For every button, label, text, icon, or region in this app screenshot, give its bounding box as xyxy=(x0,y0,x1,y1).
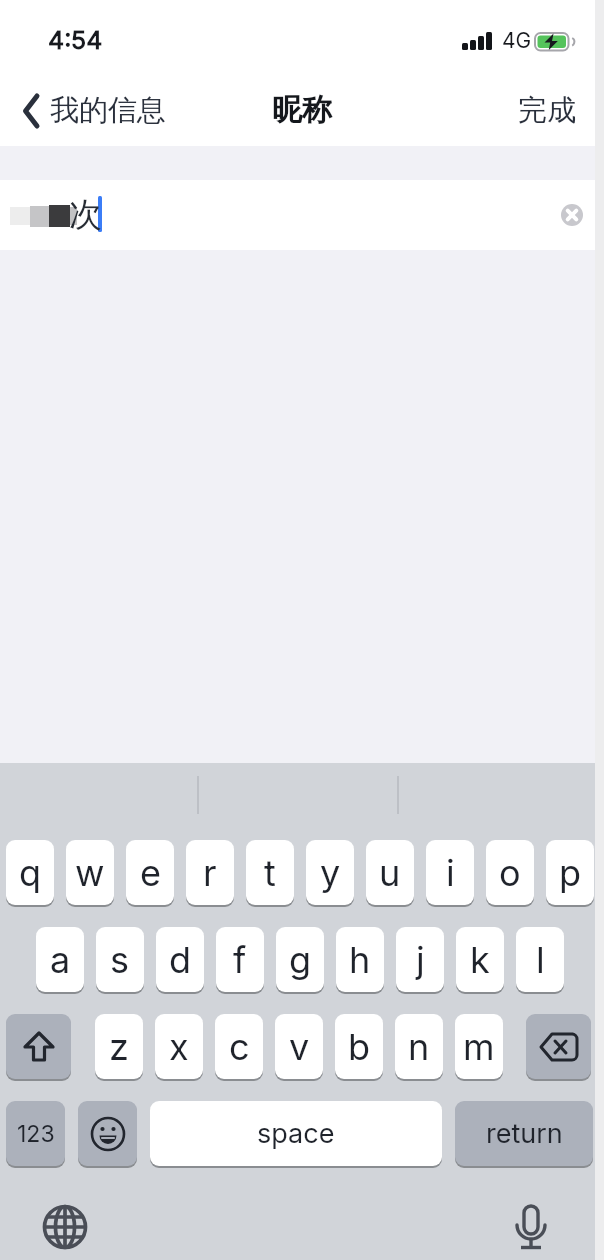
staticText: m xyxy=(463,1025,495,1069)
staticText: j xyxy=(416,938,425,982)
staticText: e xyxy=(140,851,161,895)
button[interactable]: 次 xyxy=(0,180,604,250)
button[interactable]: m xyxy=(455,1014,503,1079)
button[interactable]: 完成 xyxy=(518,92,576,129)
button[interactable] xyxy=(78,1101,137,1166)
staticText: y xyxy=(320,851,341,895)
button[interactable] xyxy=(41,1203,89,1251)
button[interactable]: s xyxy=(96,927,144,992)
staticText: 次 xyxy=(69,194,100,236)
button[interactable] xyxy=(526,1014,591,1079)
button[interactable]: z xyxy=(95,1014,143,1079)
staticText: 4G xyxy=(502,28,532,53)
staticText: 123 xyxy=(17,1120,55,1148)
staticText: f xyxy=(233,938,247,982)
button[interactable]: n xyxy=(395,1014,443,1079)
button[interactable]: h xyxy=(336,927,384,992)
staticText: u xyxy=(379,851,401,895)
button[interactable]: p xyxy=(546,840,594,905)
button[interactable]: k xyxy=(456,927,504,992)
button[interactable]: f xyxy=(216,927,264,992)
staticText: a xyxy=(50,938,71,982)
button[interactable]: x xyxy=(155,1014,203,1079)
staticText: s xyxy=(110,938,130,982)
staticText: return xyxy=(486,1117,563,1150)
button[interactable]: 我的信息 xyxy=(23,92,166,129)
staticText: space xyxy=(257,1117,335,1150)
button[interactable]: c xyxy=(215,1014,263,1079)
staticText: g xyxy=(289,938,312,982)
button[interactable]: r xyxy=(186,840,234,905)
button[interactable]: w xyxy=(66,840,114,905)
button[interactable]: v xyxy=(275,1014,323,1079)
staticText: o xyxy=(499,851,521,895)
button[interactable] xyxy=(509,1202,553,1254)
staticText: h xyxy=(349,938,371,982)
button[interactable]: d xyxy=(156,927,204,992)
staticText: v xyxy=(289,1025,310,1069)
button[interactable]: u xyxy=(366,840,414,905)
button[interactable]: l xyxy=(516,927,564,992)
staticText: i xyxy=(446,851,455,895)
staticText: 完成 xyxy=(518,92,576,129)
button[interactable]: e xyxy=(126,840,174,905)
staticText: c xyxy=(229,1025,250,1069)
button[interactable]: return xyxy=(455,1101,593,1166)
staticText: b xyxy=(348,1025,371,1069)
staticText: 4:54 xyxy=(48,25,103,53)
button[interactable]: space xyxy=(150,1101,442,1166)
staticText: p xyxy=(559,851,582,895)
staticText: n xyxy=(408,1025,430,1069)
staticText: z xyxy=(109,1025,129,1069)
staticText: d xyxy=(169,938,192,982)
button[interactable]: y xyxy=(306,840,354,905)
button[interactable]: o xyxy=(486,840,534,905)
staticText: 昵称 xyxy=(272,91,332,129)
button[interactable]: b xyxy=(335,1014,383,1079)
staticText: l xyxy=(536,938,545,982)
button[interactable]: a xyxy=(36,927,84,992)
button[interactable]: j xyxy=(396,927,444,992)
staticText: w xyxy=(75,851,105,895)
button[interactable]: g xyxy=(276,927,324,992)
staticText: 我的信息 xyxy=(50,92,166,129)
button[interactable] xyxy=(556,199,588,231)
button[interactable]: t xyxy=(246,840,294,905)
staticText: r xyxy=(203,851,217,895)
staticText: k xyxy=(470,938,490,982)
button[interactable] xyxy=(6,1014,71,1079)
staticText: x xyxy=(169,1025,189,1069)
button[interactable]: i xyxy=(426,840,474,905)
staticText: q xyxy=(19,851,42,895)
button[interactable]: 123 xyxy=(6,1101,65,1166)
button[interactable]: q xyxy=(6,840,54,905)
staticText: t xyxy=(264,851,276,895)
